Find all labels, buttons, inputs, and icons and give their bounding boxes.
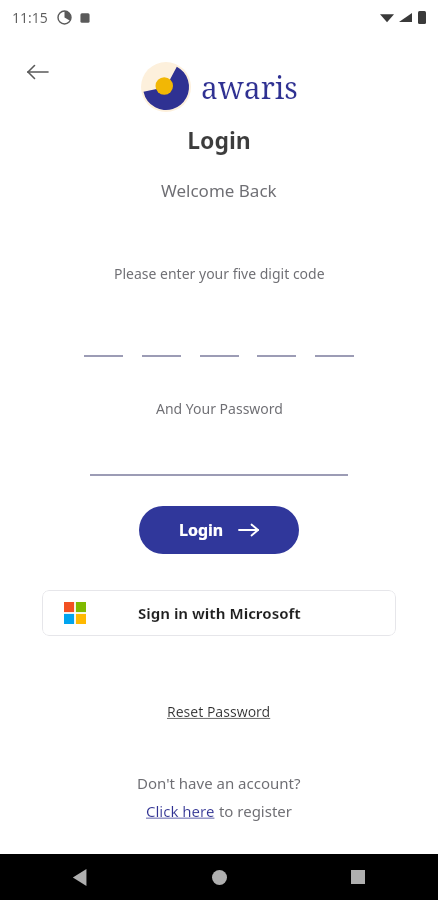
button[interactable]: Digit 3: [200, 335, 239, 357]
button[interactable]: Click here: [146, 801, 292, 821]
button[interactable]: Back: [60, 857, 100, 897]
staticText: Login: [187, 124, 251, 155]
button[interactable]: Login: [139, 506, 299, 554]
button[interactable]: Recent apps: [338, 857, 378, 897]
button[interactable]: Digit 2: [142, 335, 181, 357]
staticText: 11:15: [12, 8, 48, 27]
staticText: And Your Password: [156, 399, 283, 418]
staticText: Please enter your five digit code: [114, 264, 325, 283]
staticText: awaris: [201, 67, 298, 108]
staticText: Login: [179, 519, 224, 541]
button[interactable]: Sign in with Microsoft: [42, 590, 396, 636]
staticText: Reset Password: [167, 702, 271, 721]
staticText: Sign in with Microsoft: [138, 603, 301, 623]
button[interactable]: Home: [199, 857, 239, 897]
button[interactable]: Password field: [90, 454, 348, 476]
button[interactable]: Reset Password: [163, 698, 275, 725]
button[interactable]: Back: [14, 48, 62, 96]
staticText: Welcome Back: [161, 179, 277, 202]
button[interactable]: Digit 4: [257, 335, 296, 357]
button[interactable]: Digit 5: [315, 335, 354, 357]
staticText: Don't have an account?: [137, 773, 301, 793]
button[interactable]: Digit 1: [84, 335, 123, 357]
staticText: to register: [215, 801, 292, 821]
staticText: Click here: [146, 801, 215, 821]
